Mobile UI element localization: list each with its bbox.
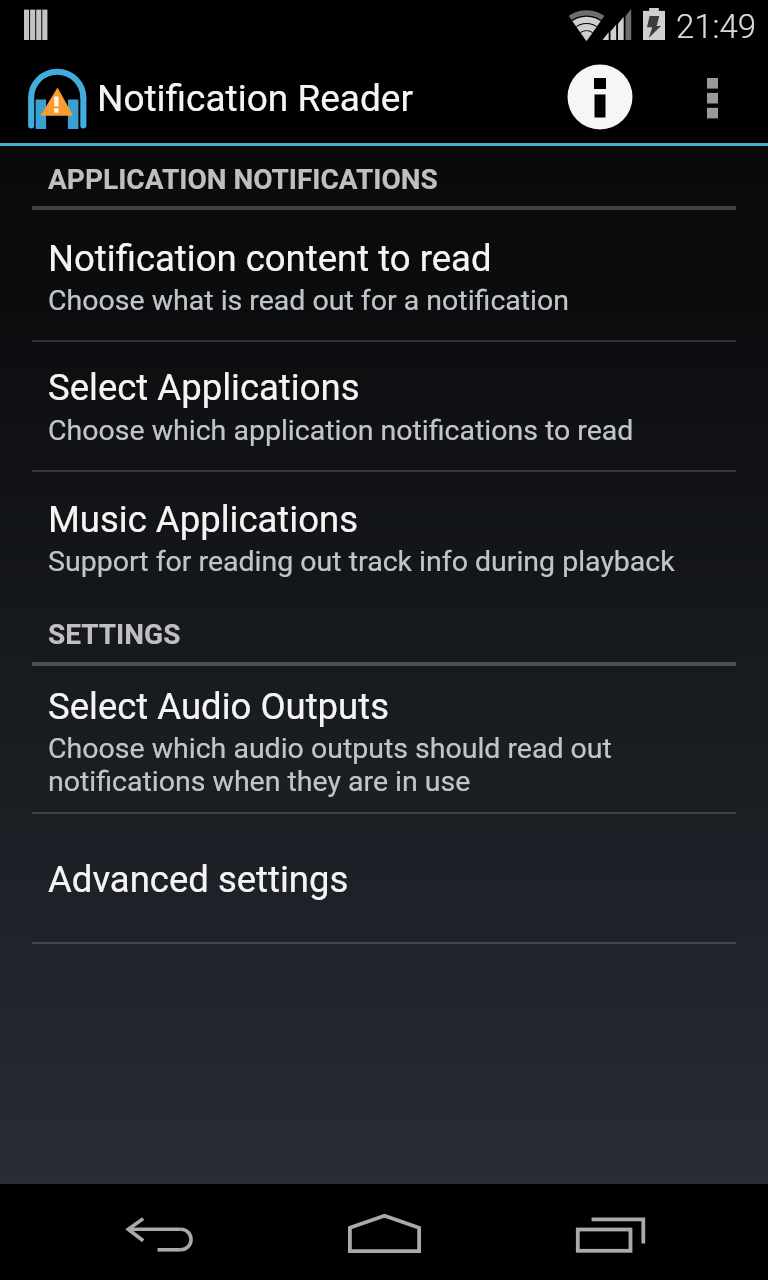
button[interactable]: Select Applications — [0, 342, 768, 470]
button[interactable]: Advanced settings — [0, 814, 768, 942]
staticText: Music Applications — [48, 498, 359, 541]
button[interactable]: More options — [666, 50, 768, 143]
button[interactable]: Back — [0, 1184, 256, 1280]
button[interactable]: Home — [256, 1184, 512, 1280]
staticText: APPLICATION NOTIFICATIONS — [48, 163, 438, 196]
staticText: Select Applications — [48, 366, 360, 409]
button[interactable]: Notification content to read — [0, 210, 768, 340]
staticText: Notification content to read — [48, 237, 492, 280]
staticText: SETTINGS — [48, 618, 181, 651]
staticText: Select Audio Outputs — [48, 685, 389, 728]
staticText: Notification Reader — [97, 77, 413, 120]
button[interactable]: About — [554, 50, 646, 143]
staticText: Advanced settings — [48, 858, 349, 901]
button[interactable]: Select Audio Outputs — [0, 666, 768, 812]
button[interactable]: Recent apps — [512, 1184, 768, 1280]
button[interactable]: Music Applications — [0, 472, 768, 602]
staticText: 21:49 — [676, 7, 757, 46]
staticText: Support for reading out track info durin… — [48, 545, 675, 578]
staticText: Choose which audio outputs should read o… — [48, 732, 612, 798]
staticText: Choose which application notifications t… — [48, 414, 634, 447]
staticText: Choose what is read out for a notificati… — [48, 284, 570, 317]
